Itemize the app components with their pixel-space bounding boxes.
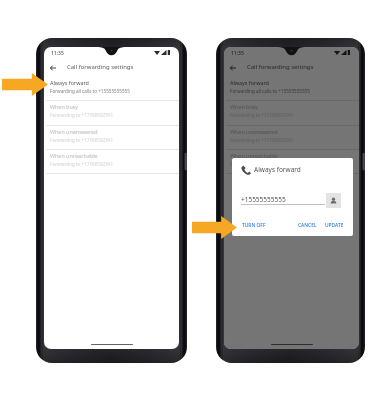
staticText: Forwarding to +17166592541 bbox=[50, 112, 114, 118]
staticText: Call forwarding settings bbox=[247, 63, 314, 71]
button[interactable]: UPDATE bbox=[323, 220, 346, 231]
staticText: UPDATE bbox=[325, 222, 344, 229]
staticText: When unanswered bbox=[230, 128, 278, 135]
button[interactable]: When unanswered bbox=[44, 125, 179, 149]
button[interactable]: When unanswered bbox=[224, 125, 359, 149]
button[interactable]: When unreachable bbox=[224, 149, 359, 173]
button[interactable]: TURN OFF bbox=[240, 220, 268, 231]
staticText: Forwarding to +17166592541 bbox=[230, 112, 294, 118]
staticText: When busy bbox=[230, 103, 259, 110]
button[interactable]: When unreachable bbox=[44, 149, 179, 173]
staticText: When busy bbox=[50, 103, 79, 110]
staticText: When unanswered bbox=[50, 128, 98, 135]
staticText: Forwarding to +17166592541 bbox=[230, 161, 294, 167]
staticText: When unreachable bbox=[230, 152, 278, 159]
button[interactable]: When busy bbox=[224, 100, 359, 124]
button[interactable]: When busy bbox=[44, 100, 179, 124]
staticText: Forwarding all calls to +15555555555 bbox=[50, 88, 130, 94]
staticText: 11:35 bbox=[231, 50, 244, 57]
staticText: Forwarding to +17166592541 bbox=[50, 161, 114, 167]
button[interactable]: Always forward bbox=[44, 76, 179, 100]
staticText: 11:35 bbox=[51, 50, 64, 57]
staticText: When unreachable bbox=[50, 152, 98, 159]
staticText: Call forwarding settings bbox=[67, 63, 134, 71]
other: pointer bbox=[192, 216, 237, 239]
button[interactable]: Always forward bbox=[224, 76, 359, 100]
staticText: Forwarding to +17166592541 bbox=[50, 137, 114, 143]
button[interactable]: Pick contact bbox=[326, 193, 341, 208]
staticText: CANCEL bbox=[298, 222, 317, 229]
staticText: Always forward bbox=[50, 79, 89, 86]
button[interactable]: Back bbox=[227, 62, 239, 74]
staticText: Forwarding to +17166592541 bbox=[230, 137, 294, 143]
staticText: Always forward bbox=[254, 165, 301, 174]
button[interactable]: Back bbox=[47, 62, 59, 74]
staticText: TURN OFF bbox=[242, 222, 266, 229]
staticText: Forwarding all calls to +15555555555 bbox=[230, 88, 310, 94]
button[interactable]: CANCEL bbox=[296, 220, 319, 231]
staticText: +15555555555 bbox=[241, 195, 286, 204]
staticText: Always forward bbox=[230, 79, 269, 86]
other: pointer bbox=[2, 73, 48, 96]
